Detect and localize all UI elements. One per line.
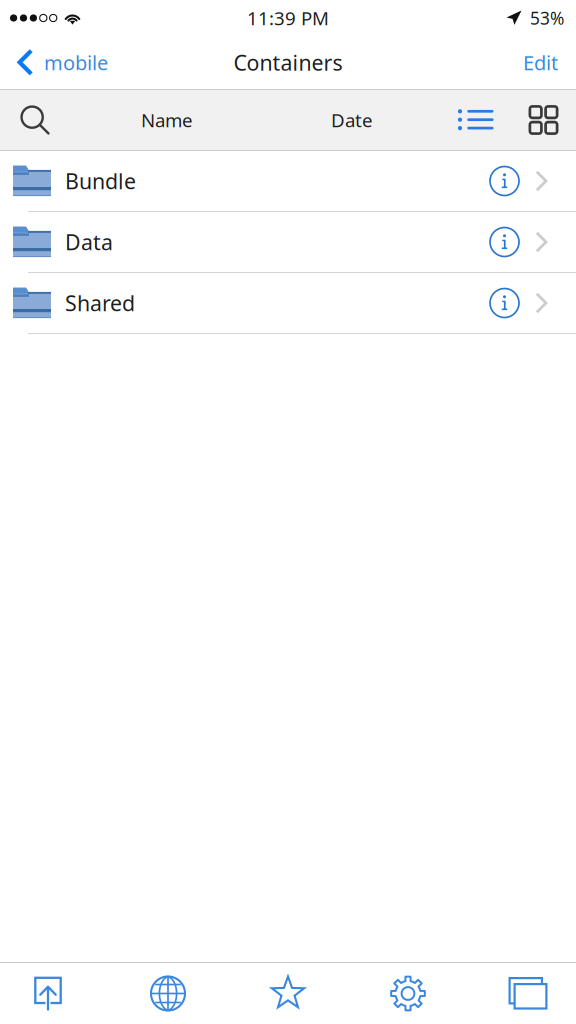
button[interactable]: Shared (0, 273, 576, 334)
button[interactable]: Data (0, 212, 576, 273)
staticText: Date (331, 108, 373, 132)
button[interactable]: Favorites (233, 962, 343, 1024)
button[interactable]: Settings (353, 962, 463, 1024)
button[interactable]: List view (440, 90, 511, 150)
button[interactable]: Date (264, 90, 440, 150)
button[interactable]: mobile (0, 36, 122, 89)
staticText: Bundle (65, 167, 136, 195)
staticText: Containers (233, 48, 342, 77)
staticText: Name (141, 108, 193, 132)
button[interactable]: Bundle (0, 151, 576, 212)
button[interactable]: Grid view (511, 90, 576, 150)
button[interactable]: Name (70, 90, 264, 150)
staticText: 53% (530, 6, 564, 29)
button[interactable]: Windows (473, 962, 576, 1024)
button[interactable]: Web (113, 962, 223, 1024)
button[interactable]: Share (0, 962, 103, 1024)
button[interactable]: Search (0, 90, 70, 150)
staticText: Data (65, 228, 113, 256)
staticText: 11:39 PM (247, 6, 329, 30)
staticText: mobile (44, 49, 108, 76)
button[interactable]: Edit (505, 36, 576, 89)
staticText: Edit (523, 49, 558, 76)
staticText: Shared (65, 289, 135, 317)
